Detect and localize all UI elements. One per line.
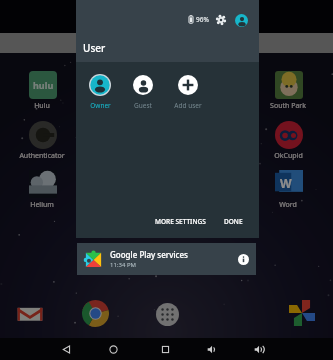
- staticText: OkCupid: [274, 151, 303, 161]
- button[interactable]: App info: [238, 254, 249, 265]
- staticText: 11:34 PM: [110, 261, 136, 269]
- staticText: Guest: [134, 101, 152, 110]
- button[interactable]: Current user: [235, 14, 248, 27]
- button[interactable]: All apps: [152, 299, 182, 329]
- staticText: South Park: [270, 101, 306, 111]
- button[interactable]: Back: [52, 338, 80, 360]
- staticText: 96%: [196, 15, 209, 24]
- button[interactable]: hulu: [14, 70, 70, 111]
- staticText: MORE SETTINGS: [155, 217, 206, 226]
- button[interactable]: Volume down: [198, 338, 226, 360]
- button[interactable]: Authenticator: [14, 120, 70, 161]
- staticText: Owner: [90, 101, 111, 110]
- staticText: Word: [279, 200, 297, 210]
- staticText: W: [280, 175, 292, 191]
- staticText: Add user: [174, 101, 202, 110]
- button[interactable]: OkCupid: [260, 120, 316, 161]
- button[interactable]: Guest: [121, 74, 165, 110]
- staticText: Authenticator: [19, 151, 65, 161]
- button[interactable]: Helium: [14, 169, 70, 210]
- button[interactable]: South Park: [260, 70, 316, 111]
- button[interactable]: Add user: [166, 74, 210, 110]
- button[interactable]: Gmail: [15, 299, 45, 329]
- button[interactable]: DONE: [217, 211, 250, 232]
- button[interactable]: W: [260, 169, 316, 210]
- button[interactable]: Owner: [78, 74, 122, 110]
- staticText: Hulu: [34, 101, 50, 111]
- button[interactable]: Home: [99, 338, 127, 360]
- staticText: hulu: [33, 79, 54, 91]
- staticText: Helium: [30, 200, 54, 210]
- button[interactable]: Chrome: [80, 298, 110, 328]
- button[interactable]: Recents: [151, 338, 179, 360]
- button[interactable]: MORE SETTINGS: [148, 211, 213, 232]
- staticText: DONE: [224, 217, 243, 226]
- button[interactable]: Volume up: [245, 338, 273, 360]
- staticText: Google Play services: [110, 249, 188, 260]
- button[interactable]: Photos: [287, 298, 317, 328]
- button[interactable]: Settings: [216, 15, 226, 25]
- staticText: User: [83, 41, 106, 55]
- button[interactable]: Google Play services: [77, 243, 256, 275]
